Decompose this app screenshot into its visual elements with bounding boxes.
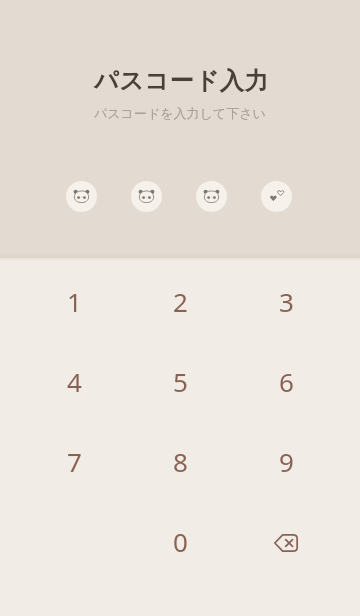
staticText: 6 xyxy=(279,364,294,399)
staticText: 8 xyxy=(173,444,188,479)
staticText: 7 xyxy=(67,444,82,479)
staticText: 0 xyxy=(173,524,188,559)
button[interactable]: 9 xyxy=(233,421,339,501)
staticText: 2 xyxy=(173,284,188,319)
staticText: 9 xyxy=(279,444,294,479)
button[interactable]: 3 xyxy=(233,261,339,341)
staticText: 3 xyxy=(279,284,294,319)
staticText: パスコード入力 xyxy=(94,66,270,96)
button[interactable]: Delete xyxy=(233,501,339,581)
button[interactable]: 7 xyxy=(21,421,127,501)
button[interactable]: 4 xyxy=(21,341,127,421)
staticText: パスコードを入力して下さい xyxy=(94,105,266,121)
button[interactable]: 1 xyxy=(21,261,127,341)
button[interactable]: 0 xyxy=(127,501,233,581)
staticText: 5 xyxy=(173,364,188,399)
button[interactable]: 6 xyxy=(233,341,339,421)
button[interactable]: 2 xyxy=(127,261,233,341)
staticText: 1 xyxy=(67,284,82,319)
staticText: 4 xyxy=(67,364,82,399)
button[interactable]: 5 xyxy=(127,341,233,421)
button[interactable]: 8 xyxy=(127,421,233,501)
